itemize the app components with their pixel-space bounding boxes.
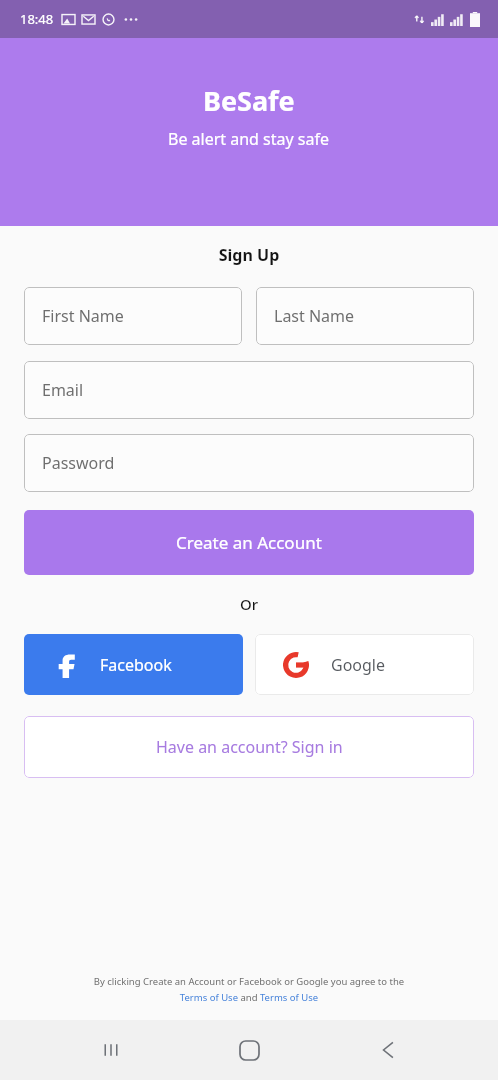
button[interactable]: Google [255, 634, 474, 695]
button[interactable]: Create an Account [24, 510, 474, 575]
staticText: Google [331, 654, 386, 676]
staticText: Password [42, 452, 115, 474]
staticText: Have an account? Sign in [156, 736, 343, 758]
staticText: Be alert and stay safe [168, 128, 330, 150]
button[interactable]: Recent apps [83, 1022, 139, 1078]
staticText: Sign Up [0, 244, 498, 266]
button[interactable]: Last Name [256, 287, 474, 345]
staticText: By clicking Create an Account or Faceboo… [0, 975, 498, 988]
staticText: BeSafe [203, 82, 295, 119]
button[interactable]: Home [221, 1022, 277, 1078]
staticText: First Name [42, 305, 124, 327]
button[interactable]: Facebook [24, 634, 243, 695]
button[interactable]: Password [24, 434, 474, 492]
staticText: 18:48 [20, 10, 54, 28]
button[interactable]: Back [360, 1022, 416, 1078]
button[interactable]: Terms of Use and Terms of Use [0, 991, 498, 1004]
staticText: Facebook [100, 654, 172, 676]
staticText: Create an Account [176, 531, 322, 554]
staticText: Or [0, 594, 498, 614]
staticText: Email [42, 379, 84, 401]
staticText: Last Name [274, 305, 355, 327]
button[interactable]: Email [24, 361, 474, 419]
button[interactable]: First Name [24, 287, 242, 345]
button[interactable]: Have an account? Sign in [24, 716, 474, 778]
